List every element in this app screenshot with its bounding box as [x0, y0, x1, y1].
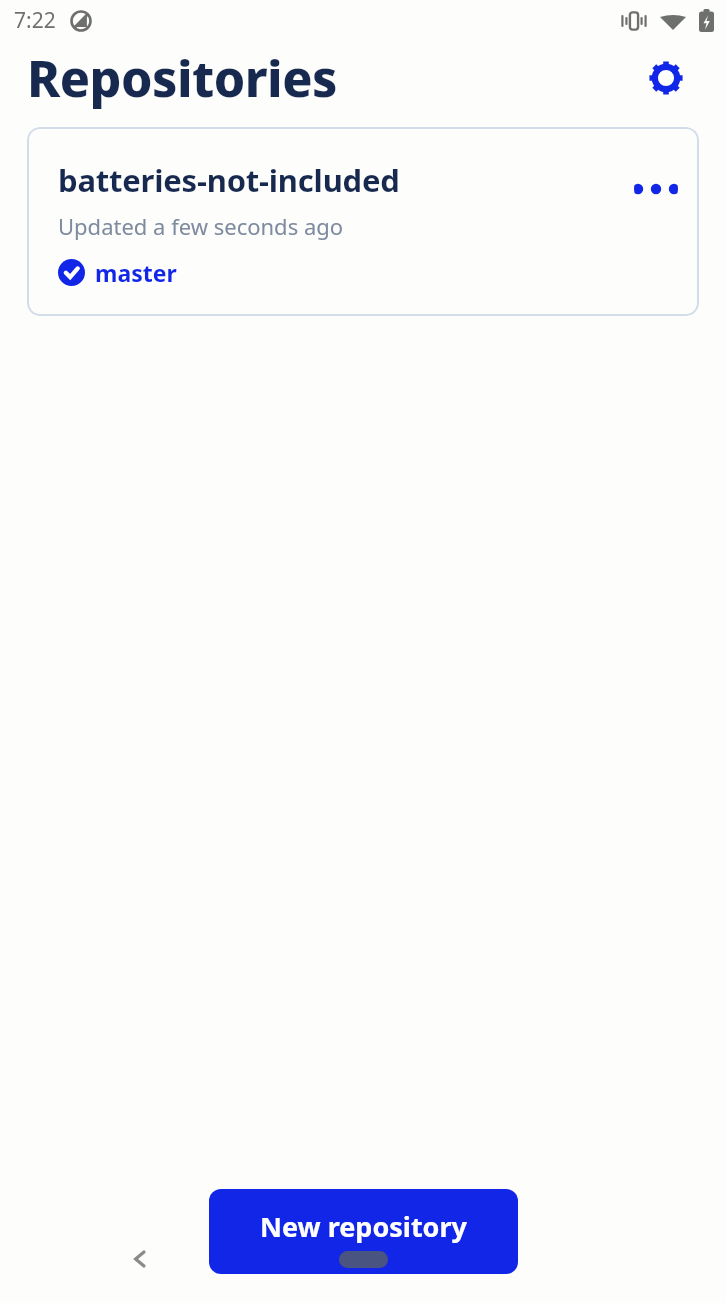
- button[interactable]: New repository: [209, 1189, 518, 1274]
- staticText: Repositories: [27, 44, 337, 112]
- staticText: batteries-not-included: [58, 159, 400, 201]
- button[interactable]: batteries-not-included: [27, 127, 699, 316]
- button[interactable]: More options: [634, 167, 678, 211]
- staticText: Updated a few seconds ago: [58, 211, 344, 241]
- staticText: master: [95, 257, 177, 288]
- button[interactable]: Back: [118, 1237, 162, 1281]
- button[interactable]: Settings: [644, 56, 688, 100]
- staticText: New repository: [260, 1208, 467, 1245]
- staticText: 7:22: [14, 6, 56, 35]
